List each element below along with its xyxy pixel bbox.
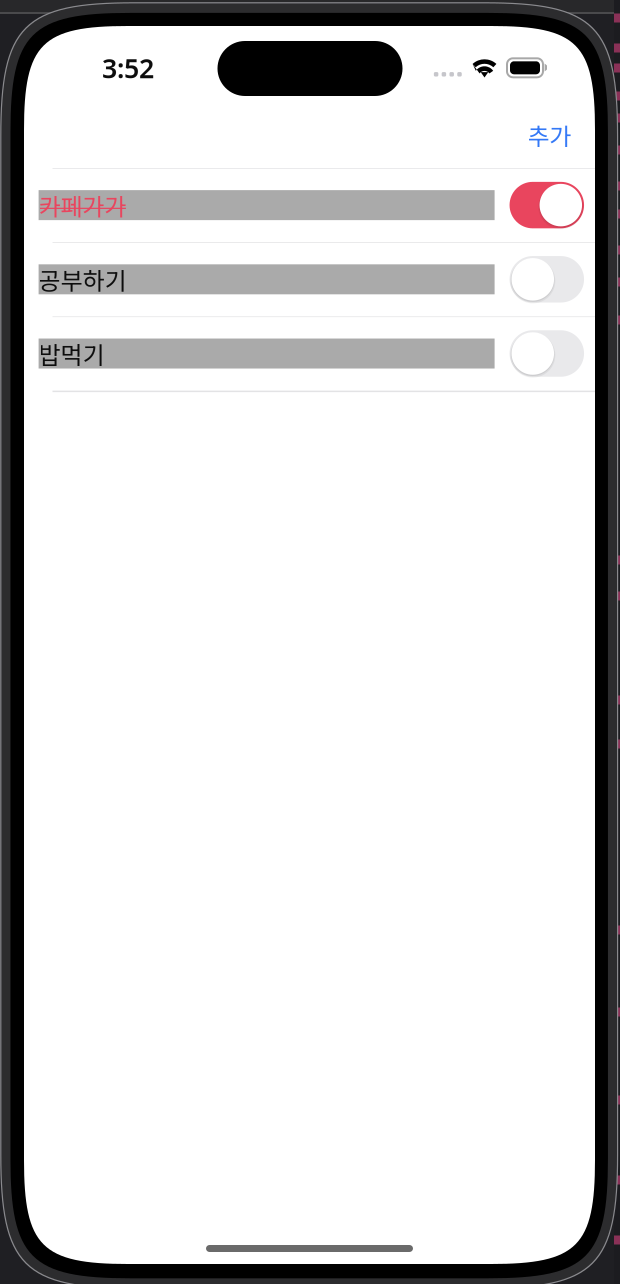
staticText: 공부하기 bbox=[39, 262, 127, 297]
button[interactable]: Done, off bbox=[509, 330, 584, 377]
button[interactable]: 밥먹기 bbox=[24, 317, 595, 390]
staticText: 추가 bbox=[527, 118, 571, 152]
button[interactable]: Done, off bbox=[509, 256, 584, 303]
staticText: 밥먹기 bbox=[39, 336, 105, 371]
staticText: 3:52 bbox=[102, 50, 154, 86]
button[interactable]: 추가 bbox=[495, 108, 584, 162]
button[interactable]: Done, on bbox=[509, 182, 584, 228]
staticText: 카페가가 bbox=[39, 188, 127, 222]
button[interactable]: 카페가가 bbox=[24, 169, 595, 241]
button[interactable]: 공부하기 bbox=[24, 243, 595, 316]
